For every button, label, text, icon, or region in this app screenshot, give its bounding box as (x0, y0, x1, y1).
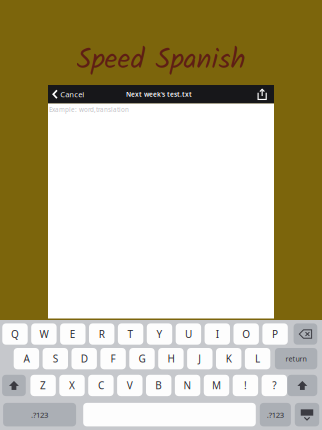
staticText: N (184, 379, 192, 392)
button[interactable]: Delete (294, 323, 317, 345)
staticText: W (39, 327, 48, 341)
button[interactable]: F (100, 348, 126, 369)
button[interactable]: K (216, 348, 241, 369)
staticText: G (138, 352, 145, 365)
staticText: ! (244, 379, 247, 392)
staticText: Cancel (60, 89, 84, 99)
button[interactable]: X (59, 375, 85, 396)
staticText: S (53, 352, 58, 365)
staticText: .?123 (31, 409, 48, 420)
staticText: A (23, 352, 29, 365)
button[interactable]: H (158, 348, 184, 369)
button[interactable]: Z (30, 375, 56, 396)
staticText: P (272, 327, 278, 341)
button[interactable]: G (129, 348, 155, 369)
button[interactable]: V (117, 375, 142, 396)
staticText: ? (272, 379, 276, 392)
staticText: Example: word,translation (49, 105, 129, 114)
button[interactable]: I (205, 323, 230, 345)
button[interactable]: U (176, 323, 201, 345)
staticText: U (185, 327, 192, 341)
button[interactable]: W (31, 323, 57, 345)
button[interactable]: Shift (2, 375, 26, 396)
staticText: .?123 (267, 409, 284, 420)
staticText: C (98, 379, 104, 392)
staticText: J (198, 352, 201, 365)
staticText: F (111, 352, 116, 365)
button[interactable]: T (118, 323, 143, 345)
button[interactable]: .?123 (260, 403, 291, 426)
staticText: T (128, 327, 134, 341)
button[interactable]: C (88, 375, 114, 396)
button[interactable]: Hide Keyboard (295, 403, 319, 426)
button[interactable]: R (89, 323, 114, 345)
button[interactable]: Q (2, 323, 28, 345)
staticText: return (286, 354, 307, 363)
staticText: B (155, 379, 162, 392)
staticText: K (226, 352, 232, 365)
staticText: Speed Spanish (76, 38, 245, 83)
button[interactable]: Cancel (48, 85, 88, 103)
button[interactable]: ? (262, 375, 287, 396)
staticText: O (242, 327, 250, 341)
staticText: X (69, 379, 75, 392)
staticText: M (212, 379, 221, 392)
staticText: V (127, 379, 133, 392)
button[interactable]: Shift (287, 375, 317, 396)
staticText: Q (11, 327, 19, 341)
button[interactable]: B (146, 375, 171, 396)
button[interactable]: return (275, 348, 317, 369)
button[interactable]: O (233, 323, 259, 345)
button[interactable]: N (175, 375, 200, 396)
button[interactable]: E (60, 323, 85, 345)
staticText: H (167, 352, 174, 365)
staticText: E (70, 327, 76, 341)
staticText: I (216, 327, 219, 341)
button[interactable]: D (71, 348, 97, 369)
staticText: L (255, 352, 260, 365)
button[interactable]: J (187, 348, 212, 369)
button[interactable]: P (262, 323, 288, 345)
button[interactable]: M (204, 375, 229, 396)
button[interactable]: Y (147, 323, 172, 345)
staticText: Y (156, 327, 162, 341)
staticText: Z (40, 379, 46, 392)
button[interactable]: ! (233, 375, 258, 396)
button[interactable]: L (245, 348, 270, 369)
staticText: Next week's test.txt (126, 90, 192, 99)
staticText: D (81, 352, 88, 365)
button[interactable]: Share (257, 85, 274, 103)
button[interactable]: A (14, 348, 39, 369)
staticText: R (99, 327, 105, 341)
button[interactable]: .?123 (3, 403, 76, 426)
button[interactable]: S (43, 348, 68, 369)
